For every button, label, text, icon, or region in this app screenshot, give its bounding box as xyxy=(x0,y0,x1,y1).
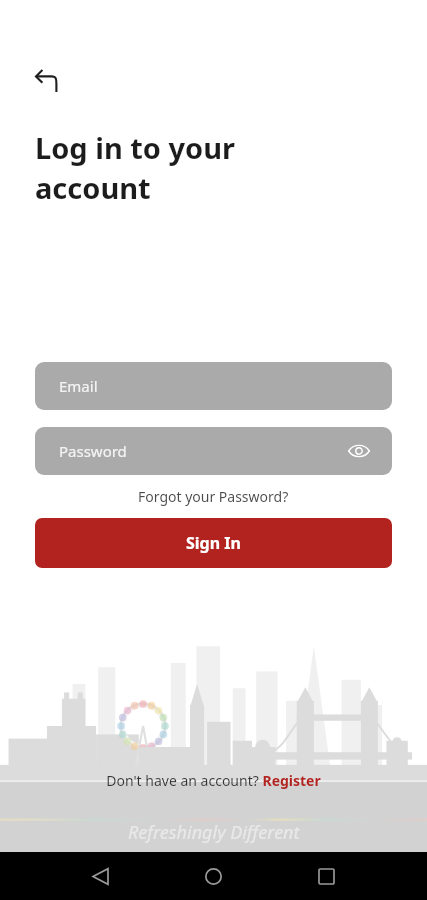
button[interactable]: Sign In xyxy=(35,518,392,568)
button[interactable]: Home xyxy=(191,854,235,898)
button[interactable]: Back xyxy=(26,60,70,104)
button[interactable]: Show password xyxy=(344,436,374,466)
staticText: Refreshingly Different xyxy=(128,820,300,845)
button[interactable]: Don't have an account? Register xyxy=(0,756,427,804)
button[interactable]: Email xyxy=(35,362,392,410)
staticText: Password xyxy=(59,441,127,461)
button[interactable]: Recent apps xyxy=(304,854,348,898)
staticText: Forgot your Password? xyxy=(138,487,289,506)
button[interactable]: Back xyxy=(78,854,122,898)
staticText: Log in to your account xyxy=(35,128,236,208)
button[interactable]: Forgot your Password? xyxy=(0,487,427,506)
button[interactable]: Password xyxy=(35,427,392,475)
staticText: Email xyxy=(59,376,98,396)
staticText: Sign In xyxy=(186,532,241,554)
staticText: Don't have an account? Register xyxy=(106,771,321,790)
